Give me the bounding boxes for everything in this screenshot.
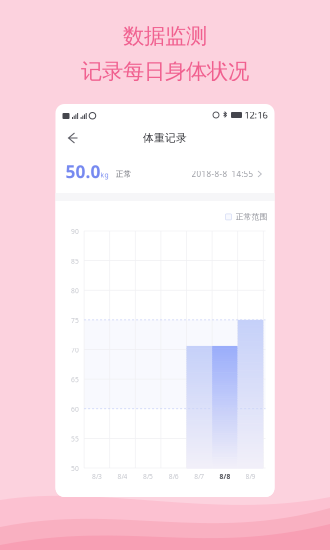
staticText: 75 [71,316,79,325]
staticText: 8/8 [219,472,230,481]
staticText: 60 [71,405,79,414]
staticText: 8/4 [117,472,127,481]
staticText: 55 [71,434,79,443]
button[interactable]: 50.0 [55,150,274,193]
staticText: 8/5 [143,472,153,481]
staticText: 8/3 [92,472,102,481]
staticText: 12:16 [244,109,267,121]
staticText: 80 [71,286,79,295]
staticText: 50 [71,464,79,473]
button[interactable]: Back [60,127,84,149]
staticText: 8/6 [169,472,179,481]
staticText: 正常范围 [235,212,267,222]
staticText: kg [100,171,108,179]
staticText: 2018-8-8 14:55 [191,169,253,179]
staticText: 50.0 [65,160,100,183]
staticText: 体重记录 [143,131,187,144]
staticText: 90 [71,227,79,236]
staticText: 正常 [115,169,131,179]
staticText: 85 [71,257,79,265]
staticText: 数据监测 [123,23,207,49]
staticText: 8/9 [245,472,255,481]
staticText: 8/7 [194,472,204,481]
staticText: 70 [71,345,79,354]
staticText: 65 [71,375,79,384]
staticText: 记录每日身体状况 [81,58,249,84]
